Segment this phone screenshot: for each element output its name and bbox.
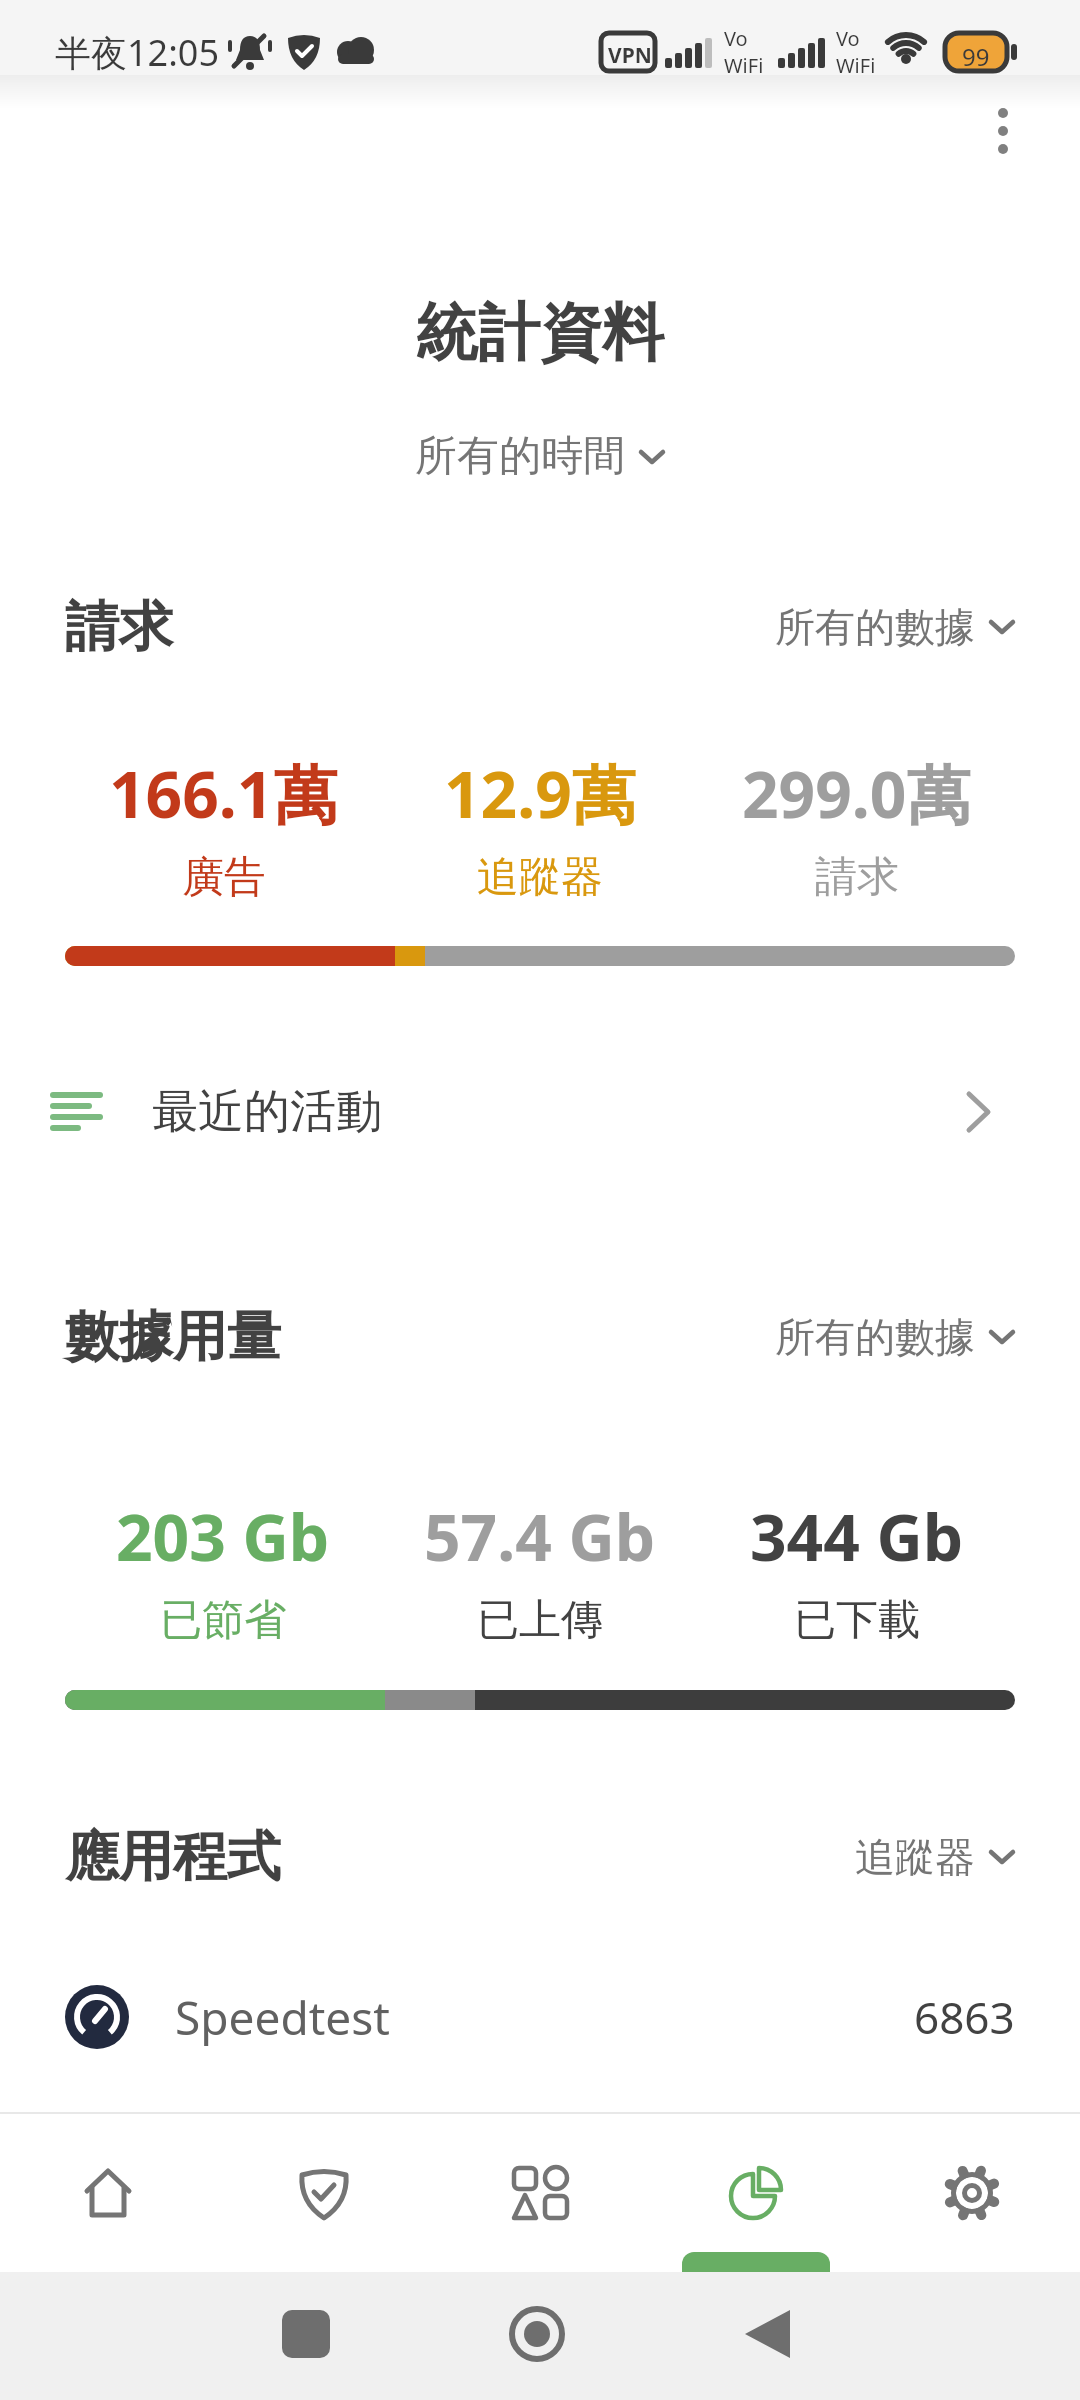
staticText: 所有的數據 [775, 602, 975, 652]
button[interactable] [0, 2114, 216, 2272]
button[interactable]: Speedtest [0, 1975, 1080, 2059]
staticText: 應用程式 [65, 1823, 281, 1891]
staticText: 請求 [815, 851, 899, 904]
button[interactable]: 追蹤器 [855, 1832, 1015, 1882]
staticText: 廣告 [182, 851, 266, 904]
button[interactable] [216, 2114, 432, 2272]
staticText: VPN [608, 41, 652, 70]
staticText: 最近的活動 [152, 1083, 382, 1141]
staticText: 299.0萬 [742, 750, 971, 837]
button[interactable]: 所有的數據 [775, 1312, 1015, 1362]
staticText: 追蹤器 [477, 851, 603, 904]
staticText: Vo [836, 25, 860, 52]
staticText: 所有的時間 [415, 430, 625, 483]
staticText: WiFi [836, 52, 876, 79]
button[interactable] [864, 2114, 1080, 2272]
button[interactable] [0, 2272, 360, 2400]
staticText: 203 Gb [116, 1493, 330, 1580]
staticText: 所有的數據 [775, 1312, 975, 1362]
staticText: 已下載 [794, 1594, 920, 1647]
button[interactable]: 最近的活動 [0, 1066, 1080, 1158]
button[interactable] [432, 2114, 648, 2272]
staticText: 166.1萬 [109, 750, 338, 837]
staticText: 請求 [65, 593, 173, 661]
button[interactable] [975, 103, 1031, 159]
staticText: 統計資料 [416, 294, 664, 372]
staticText: 已節省 [160, 1594, 286, 1647]
button[interactable] [360, 2272, 720, 2400]
staticText: 6863 [914, 1987, 1015, 2047]
staticText: WiFi [724, 52, 764, 79]
button[interactable] [720, 2272, 1080, 2400]
button[interactable]: 所有的時間 [415, 430, 665, 483]
staticText: 半夜12:05 [55, 28, 220, 77]
staticText: 12.9萬 [444, 750, 636, 837]
staticText: 99 [962, 40, 990, 73]
staticText: 數據用量 [65, 1303, 281, 1371]
button[interactable]: 所有的數據 [775, 602, 1015, 652]
staticText: 已上傳 [477, 1594, 603, 1647]
staticText: Speedtest [175, 1986, 390, 2049]
button[interactable] [648, 2114, 864, 2272]
staticText: 57.4 Gb [424, 1493, 656, 1580]
staticText: 追蹤器 [855, 1832, 975, 1882]
staticText: Vo [724, 25, 748, 52]
staticText: 344 Gb [750, 1493, 964, 1580]
